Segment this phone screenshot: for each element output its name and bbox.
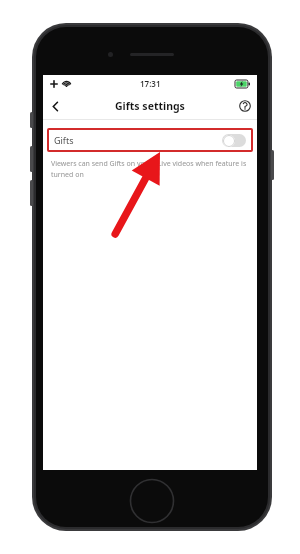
staticText: 17:31 [140,78,161,89]
button[interactable]: Help [233,94,257,118]
staticText: Gifts [54,134,74,146]
staticText: Viewers can send Gifts on your eLive vid… [51,159,249,179]
button[interactable]: Gifts [47,128,253,152]
button[interactable]: Back [43,94,67,118]
staticText: Gifts settings [115,99,185,113]
